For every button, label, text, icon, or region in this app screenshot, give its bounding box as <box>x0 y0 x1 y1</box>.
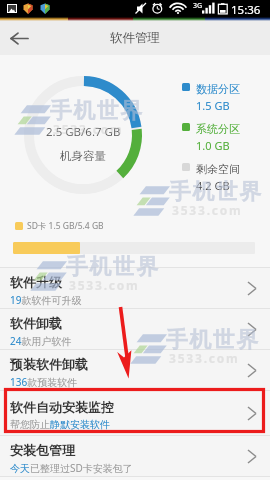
staticText: 软件自动安装监控 <box>10 399 114 415</box>
staticText: 19款软件可升级 <box>10 293 82 307</box>
staticText: 安装包管理 <box>10 442 75 458</box>
staticText: 4.2 GB <box>196 178 230 193</box>
staticText: 手机世界 <box>165 326 259 354</box>
staticText: 手机世界 <box>65 253 159 281</box>
button[interactable]: 软件升级 <box>0 268 270 308</box>
staticText: 软件升级 <box>10 274 62 290</box>
staticText: 帮您防止静默安装软件 <box>10 418 110 431</box>
staticText: 手机世界 <box>49 97 143 125</box>
staticText: 1.5 GB <box>196 98 230 113</box>
staticText: 15:36 <box>231 2 261 18</box>
staticText: 软件卸载 <box>10 315 62 331</box>
staticText: 3533.com <box>53 121 124 137</box>
staticText: 3533.com <box>172 202 243 218</box>
staticText: 系统分区 <box>196 122 240 136</box>
staticText: SD卡 1.5 GB/5.4 GB <box>27 220 104 232</box>
staticText: 24款用户软件 <box>10 334 72 348</box>
button[interactable]: 预装软件卸载 <box>0 350 270 390</box>
button[interactable]: 软件卸载 <box>0 309 270 349</box>
button[interactable]: 软件自动安装监控 <box>0 391 270 435</box>
staticText: 今天已整理过SD卡安装包了 <box>10 461 133 475</box>
staticText: 手机世界 <box>168 178 262 206</box>
staticText: 2.5 GB/6.7 GB <box>46 124 121 140</box>
staticText: 3533.com <box>69 277 140 293</box>
staticText: 1.0 GB <box>196 138 230 153</box>
button[interactable]: Back <box>0 21 38 55</box>
staticText: 剩余空间 <box>196 162 240 176</box>
staticText: 数据分区 <box>196 82 240 96</box>
button[interactable]: 安装包管理 <box>0 436 270 476</box>
staticText: 机身容量 <box>60 149 106 163</box>
staticText: 136款预装软件 <box>10 375 78 389</box>
staticText: 预装软件卸载 <box>10 356 88 372</box>
staticText: 3G <box>193 1 203 11</box>
staticText: 3533.com <box>169 350 240 366</box>
staticText: 软件管理 <box>110 30 160 46</box>
